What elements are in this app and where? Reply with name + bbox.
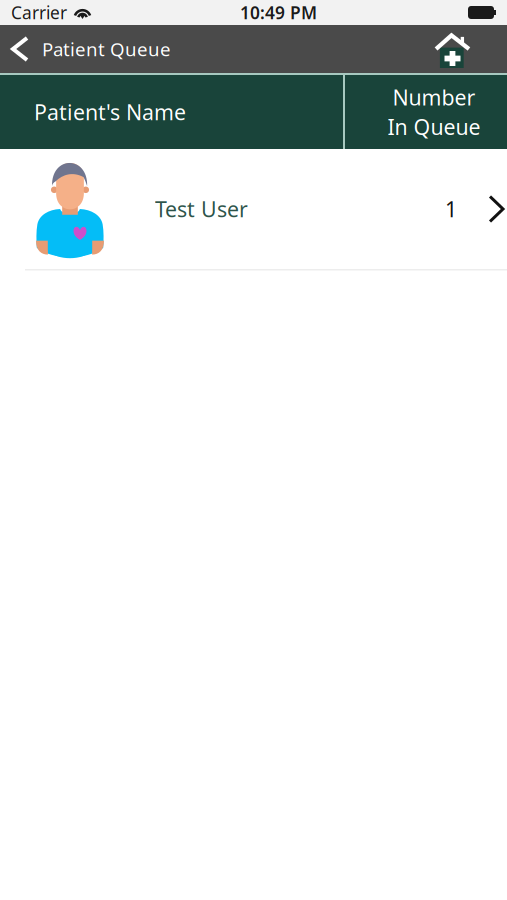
staticText: In Queue [387, 112, 480, 141]
button[interactable]: Test User [0, 149, 507, 270]
staticText: 1 [445, 195, 457, 223]
staticText: 10:49 PM [240, 1, 317, 24]
staticText: Patient Queue [42, 37, 171, 61]
staticText: Test User [155, 195, 248, 223]
staticText: Carrier [11, 1, 67, 24]
staticText: Patient's Name [34, 98, 186, 126]
button[interactable]: Back [0, 25, 42, 73]
button[interactable]: Home [435, 26, 507, 72]
staticText: Number [392, 83, 475, 111]
